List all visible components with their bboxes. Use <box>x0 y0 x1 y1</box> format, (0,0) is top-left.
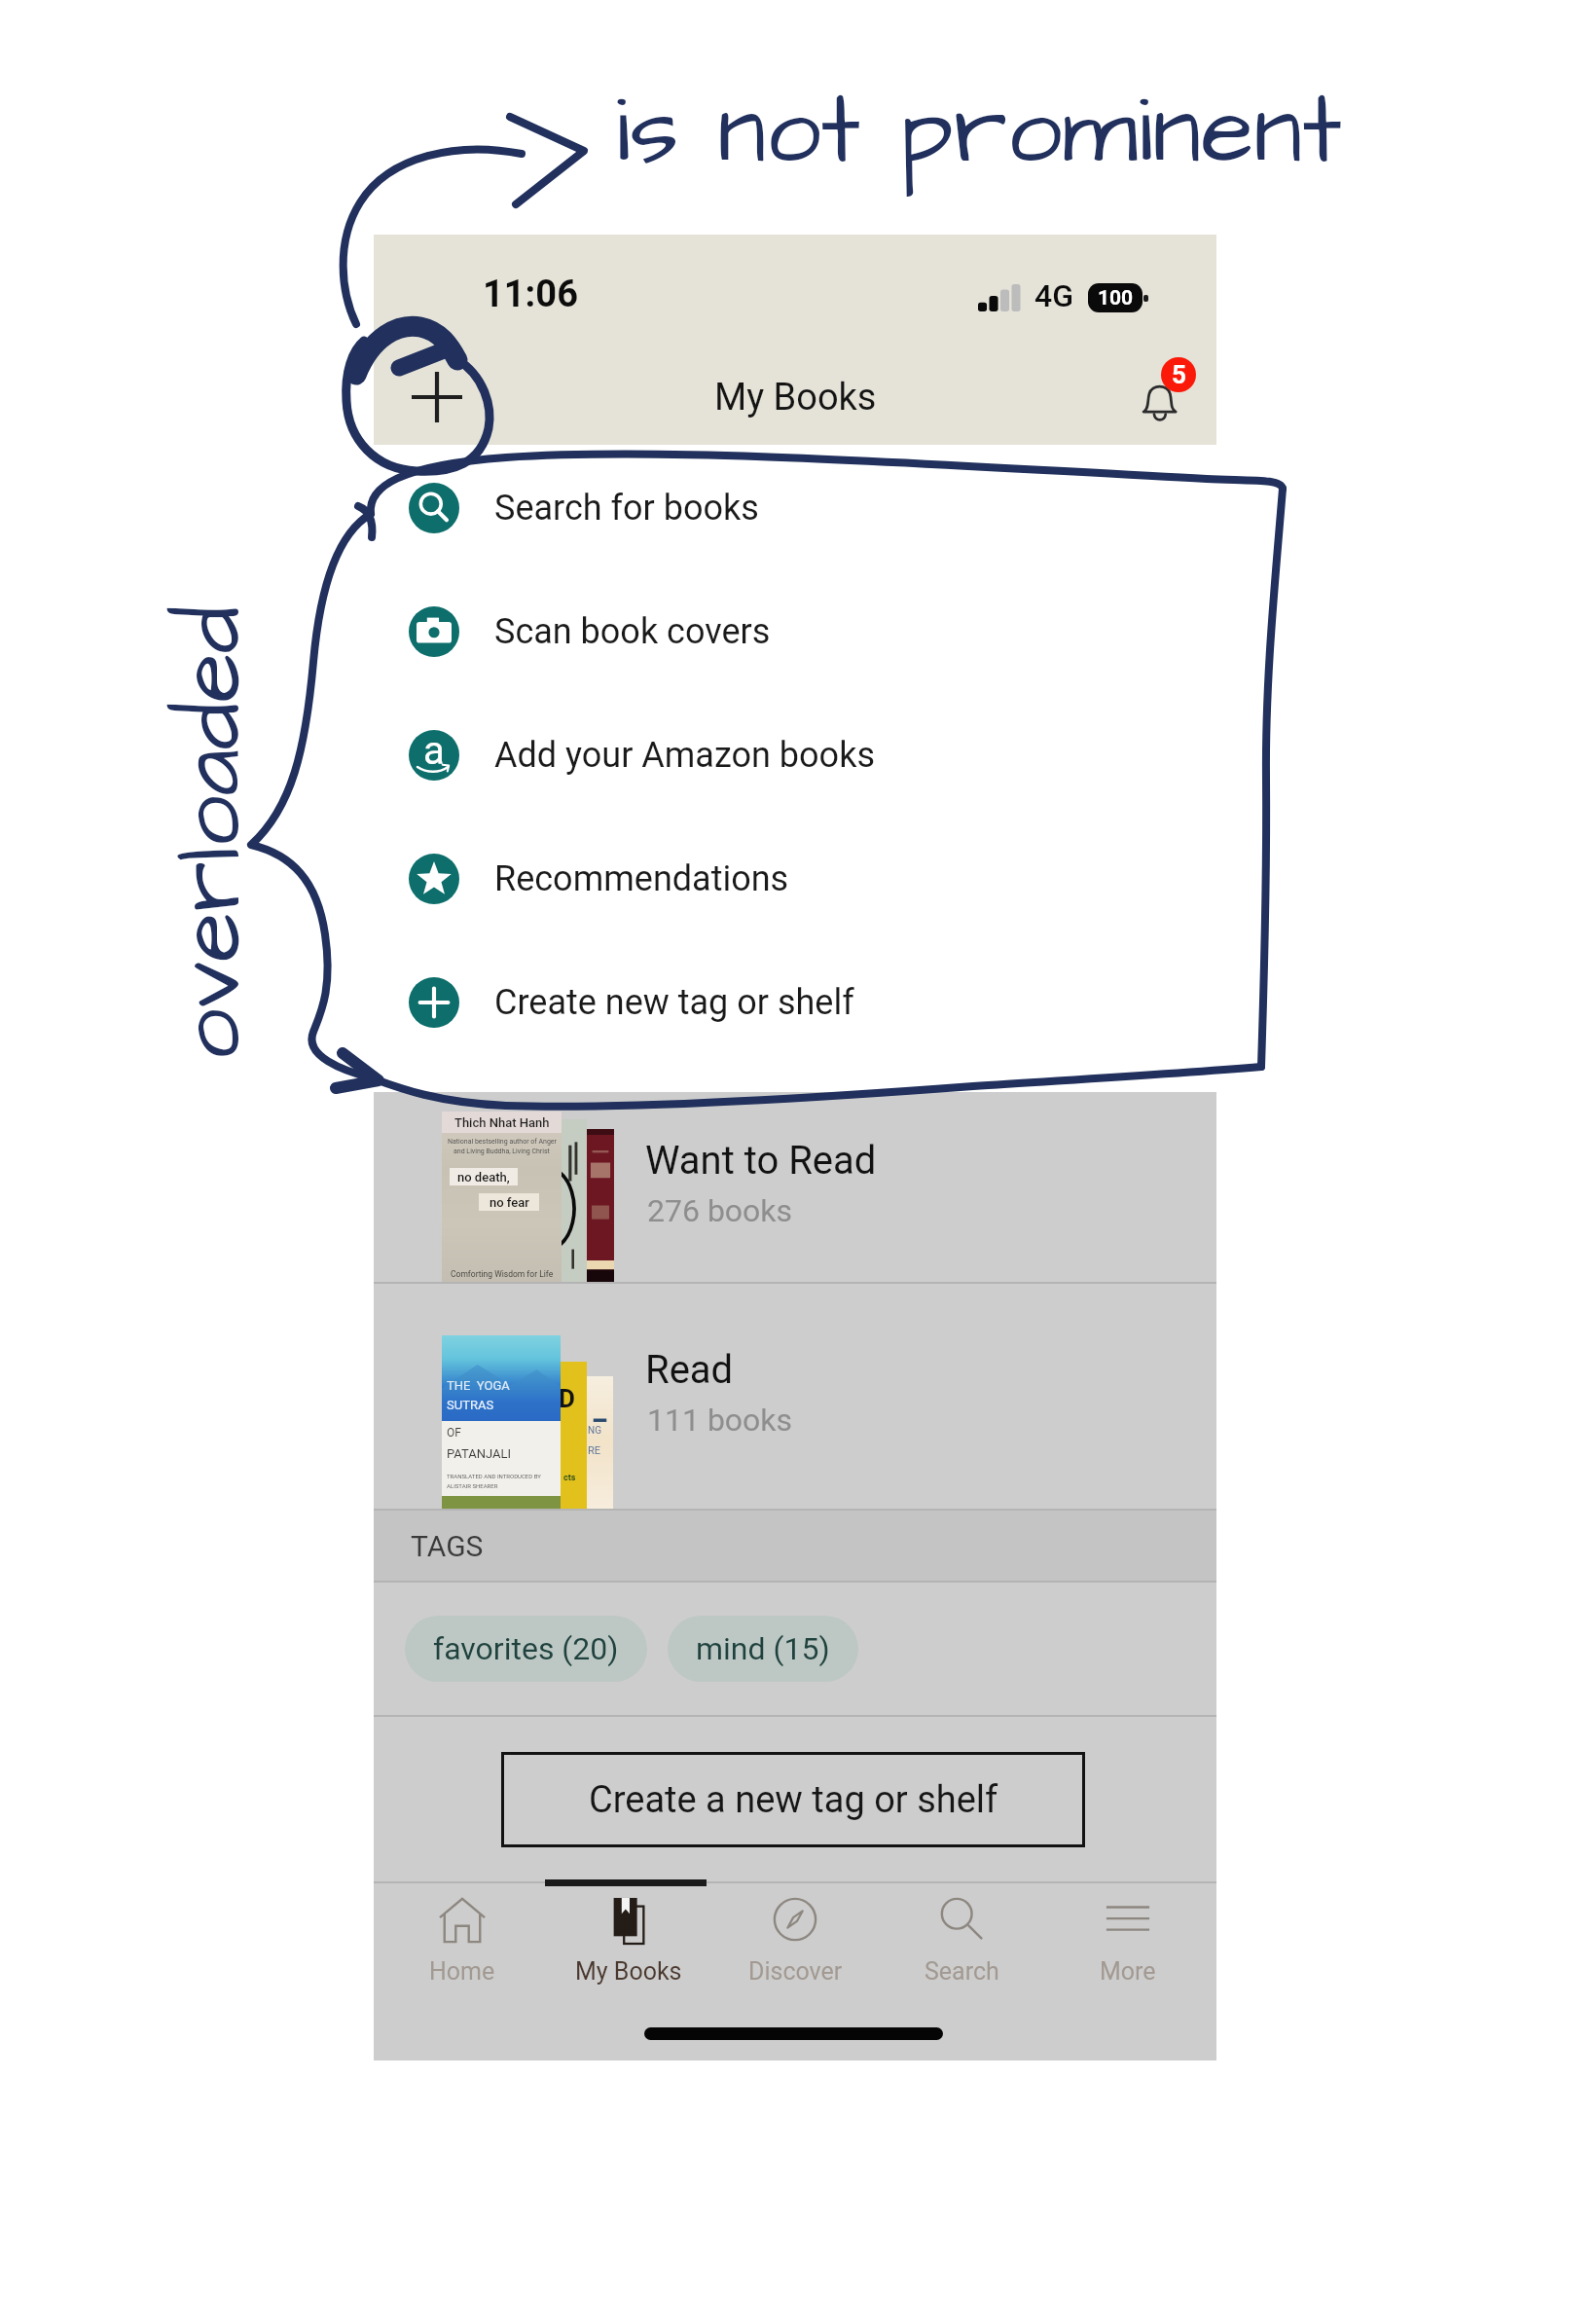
staticText: My Books <box>575 1957 682 1986</box>
staticText: favorites (20) <box>433 1630 619 1667</box>
button[interactable]: Notifications <box>1115 355 1199 439</box>
button[interactable]: Scan book covers <box>374 577 1216 686</box>
staticText: no death, <box>457 1170 510 1185</box>
button[interactable]: favorites (20) <box>405 1616 647 1682</box>
staticText: is not prominent <box>615 64 1342 200</box>
staticText: 276 books <box>647 1192 793 1229</box>
staticText: Comforting Wisdom for Life <box>451 1269 554 1279</box>
staticText: Read <box>645 1347 734 1393</box>
staticText: TAGS <box>411 1529 484 1563</box>
staticText: OF <box>447 1426 461 1440</box>
staticText: cts <box>563 1473 576 1483</box>
staticText: Search for books <box>494 488 759 529</box>
staticText: TRANSLATED AND INTRODUCED BY <box>447 1473 541 1479</box>
staticText: My Books <box>714 376 877 419</box>
button[interactable]: Thich Nhat Hanh <box>374 1092 1216 1282</box>
button[interactable]: Discover <box>717 1897 873 1986</box>
staticText: no fear <box>490 1195 529 1210</box>
staticText: NG <box>588 1425 601 1437</box>
staticText: 11:06 <box>483 273 578 316</box>
button[interactable]: Recommendations <box>374 824 1216 933</box>
staticText: 111 books <box>647 1402 793 1439</box>
button[interactable]: Create new tag or shelf <box>374 948 1216 1057</box>
staticText: National bestselling author of Anger <box>448 1138 557 1146</box>
staticText: Recommendations <box>494 858 789 899</box>
staticText: D <box>561 1384 575 1413</box>
staticText: Want to Read <box>645 1138 877 1184</box>
button[interactable]: mind (15) <box>668 1616 858 1682</box>
staticText: RE <box>588 1444 601 1457</box>
staticText: More <box>1100 1957 1156 1986</box>
button[interactable]: Add book <box>399 359 475 435</box>
button[interactable]: a <box>374 701 1216 810</box>
button[interactable]: Home <box>384 1897 540 1986</box>
staticText: 5 <box>1172 360 1186 389</box>
staticText: a <box>423 730 445 773</box>
button[interactable]: More <box>1050 1897 1206 1986</box>
staticText: overloaded <box>147 605 275 1060</box>
staticText: Search <box>925 1957 999 1986</box>
staticText: ALISTAIR SHEARER <box>447 1482 498 1489</box>
staticText: 100 <box>1098 286 1134 310</box>
button[interactable]: Search <box>884 1897 1039 1986</box>
staticText: and Living Buddha, Living Christ <box>453 1148 550 1155</box>
button[interactable]: Create a new tag or shelf <box>501 1752 1085 1847</box>
button[interactable]: My Books <box>551 1897 707 1986</box>
staticText: Discover <box>748 1957 843 1986</box>
staticText: Create a new tag or shelf <box>589 1778 998 1822</box>
button[interactable]: NG <box>374 1284 1216 1509</box>
staticText: SUTRAS <box>447 1398 494 1412</box>
staticText: Create new tag or shelf <box>494 982 854 1023</box>
staticText: Home <box>429 1957 495 1986</box>
staticText: Thich Nhat Hanh <box>454 1115 550 1130</box>
staticText: 4G <box>1034 277 1073 314</box>
button[interactable]: Search for books <box>374 454 1216 563</box>
staticText: THE YOGA <box>447 1378 510 1393</box>
staticText: Add your Amazon books <box>494 735 875 776</box>
staticText: mind (15) <box>696 1630 830 1667</box>
staticText: PATANJALI <box>447 1446 512 1461</box>
staticText: Scan book covers <box>494 611 771 652</box>
